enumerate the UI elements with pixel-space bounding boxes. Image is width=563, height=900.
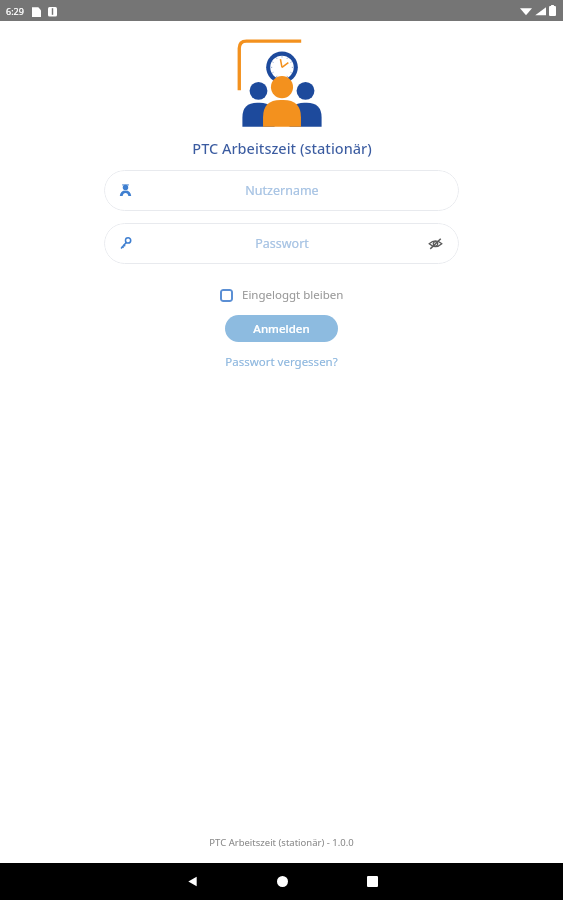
staticText: Passwort vergessen? [225,354,338,370]
staticText: PTC Arbeitszeit (stationär) [192,138,372,158]
button[interactable]: Eingeloggt bleiben [214,284,350,306]
staticText: PTC Arbeitszeit (stationär) - 1.0.0 [209,836,354,849]
other: PTC Arbeitszeit Logo [234,37,330,129]
button[interactable]: Passwort [104,223,459,264]
staticText: Eingeloggt bleiben [242,287,344,303]
staticText: Nutzername [245,182,319,199]
staticText: 6:29 [6,5,24,17]
button[interactable]: Home [259,863,305,900]
staticText: Anmelden [253,321,310,337]
staticText: Passwort [255,235,309,252]
button[interactable]: Passwort anzeigen [425,233,446,254]
button[interactable]: Back [169,863,215,900]
button[interactable]: Recent apps [349,863,395,900]
button[interactable]: Anmelden [225,315,338,342]
button[interactable]: Passwort vergessen? [219,352,344,372]
button[interactable]: Nutzername [104,170,459,211]
